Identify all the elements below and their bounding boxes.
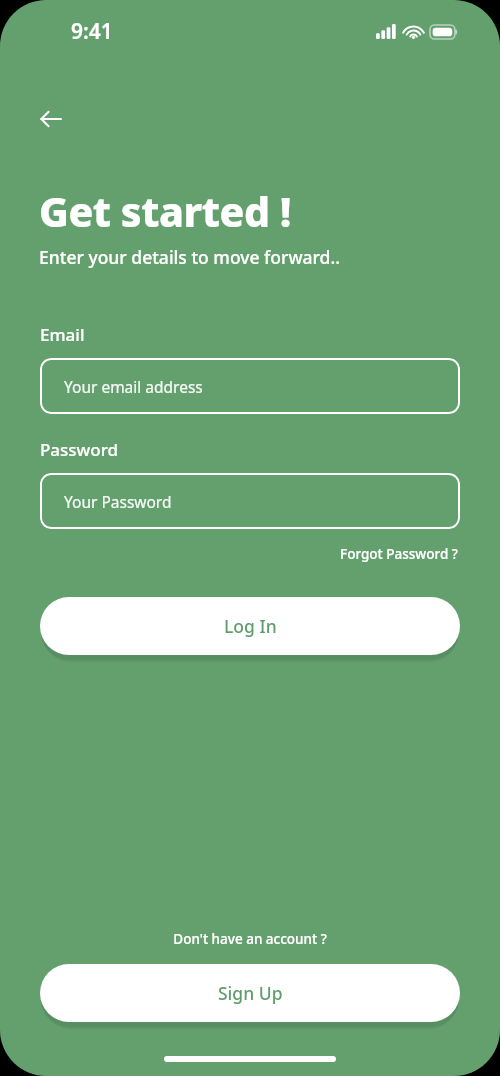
staticText: Your email address: [64, 376, 203, 397]
staticText: Enter your details to move forward..: [39, 245, 340, 269]
staticText: 9:41: [71, 17, 113, 46]
button[interactable]: Back: [28, 96, 74, 142]
staticText: Log In: [224, 614, 277, 638]
button[interactable]: Your email address: [40, 358, 460, 414]
staticText: Password: [40, 438, 119, 461]
staticText: Your Password: [64, 491, 172, 512]
staticText: Get started !: [39, 183, 291, 239]
staticText: Sign Up: [218, 981, 283, 1005]
button[interactable]: Log In: [40, 597, 460, 655]
button[interactable]: Your Password: [40, 473, 460, 529]
staticText: Don't have an account ?: [0, 930, 500, 948]
staticText: Forgot Password ?: [340, 545, 458, 563]
button[interactable]: Sign Up: [40, 964, 460, 1022]
staticText: Email: [40, 323, 85, 346]
button[interactable]: Forgot Password ?: [338, 543, 460, 565]
